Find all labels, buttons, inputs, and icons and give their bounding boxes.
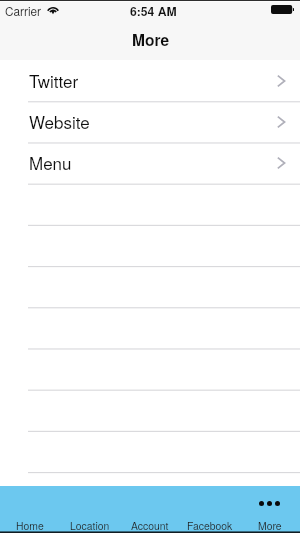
other: More options xyxy=(259,501,280,506)
staticText: Menu xyxy=(29,150,72,174)
button[interactable]: Menu xyxy=(0,142,300,183)
staticText: Website xyxy=(29,109,90,133)
staticText: Location xyxy=(70,518,110,533)
staticText: More xyxy=(132,29,170,51)
staticText: Account xyxy=(131,518,169,533)
staticText: Twitter xyxy=(29,68,79,92)
other: Battery full xyxy=(271,5,294,14)
staticText: Facebook xyxy=(187,518,233,533)
button[interactable]: More options xyxy=(240,486,300,533)
staticText: 6:54 AM xyxy=(130,2,177,19)
other: Wi-Fi signal xyxy=(46,5,60,14)
button[interactable]: Account xyxy=(120,486,180,533)
button[interactable]: Facebook xyxy=(180,486,240,533)
button[interactable]: Twitter xyxy=(0,60,300,101)
button[interactable]: Website xyxy=(0,101,300,142)
staticText: More xyxy=(258,518,282,533)
staticText: Home xyxy=(16,518,44,533)
button[interactable]: Home xyxy=(0,486,60,533)
staticText: Carrier xyxy=(5,2,42,19)
button[interactable]: Location xyxy=(60,486,120,533)
